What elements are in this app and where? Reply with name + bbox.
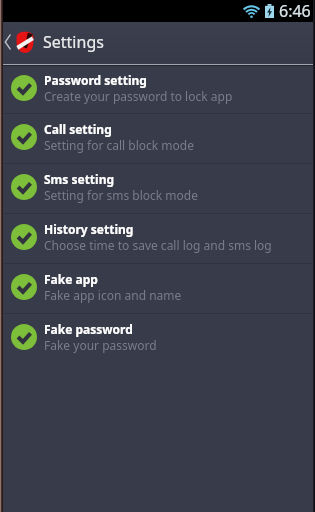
staticText: Fake your password bbox=[44, 337, 157, 353]
button[interactable]: History setting bbox=[0, 214, 315, 263]
staticText: Choose time to save call log and sms log bbox=[44, 237, 272, 253]
staticText: Fake app icon and name bbox=[44, 287, 182, 303]
staticText: Call setting bbox=[44, 121, 112, 137]
button[interactable]: Navigate up bbox=[0, 30, 36, 54]
staticText: History setting bbox=[44, 221, 134, 237]
staticText: Settings bbox=[43, 31, 104, 53]
staticText: Setting for call block mode bbox=[44, 137, 194, 153]
staticText: Setting for sms block mode bbox=[44, 187, 198, 203]
staticText: Password setting bbox=[44, 72, 147, 88]
staticText: Create your password to lock app bbox=[44, 88, 233, 104]
staticText: Fake app bbox=[44, 271, 98, 287]
button[interactable]: Fake app bbox=[0, 264, 315, 313]
staticText: 6:46 bbox=[279, 0, 311, 22]
button[interactable]: Sms setting bbox=[0, 164, 315, 213]
button[interactable]: Password setting bbox=[0, 66, 315, 113]
staticText: Sms setting bbox=[44, 171, 115, 187]
button[interactable]: Call setting bbox=[0, 114, 315, 163]
button[interactable]: Fake password bbox=[0, 314, 315, 363]
staticText: Fake password bbox=[44, 321, 133, 337]
